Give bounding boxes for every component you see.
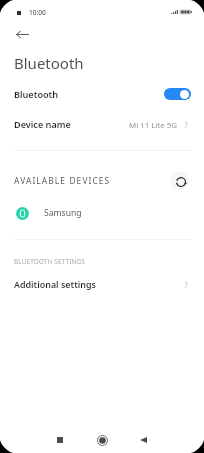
staticText: Bluetooth xyxy=(14,88,59,100)
staticText: Device name xyxy=(14,118,71,130)
button[interactable]: Samsung xyxy=(0,200,204,226)
staticText: Mi 11 Lite 5G xyxy=(129,120,178,131)
button[interactable]: Recents xyxy=(44,425,76,453)
staticText: Samsung xyxy=(44,207,82,219)
button[interactable]: Bluetooth xyxy=(0,81,204,106)
button[interactable]: Device name xyxy=(0,112,204,136)
staticText: BLUETOOTH SETTINGS xyxy=(14,257,86,266)
button[interactable]: Home xyxy=(86,425,118,453)
staticText: AVAILABLE DEVICES xyxy=(14,175,111,186)
staticText: Bluetooth xyxy=(14,53,84,73)
button[interactable]: Refresh xyxy=(170,171,189,190)
staticText: Additional settings xyxy=(14,278,96,290)
button[interactable]: Back xyxy=(8,24,36,44)
staticText: 10:00 xyxy=(29,8,46,17)
button[interactable]: Additional settings xyxy=(0,272,204,296)
button[interactable]: Back xyxy=(128,425,160,453)
